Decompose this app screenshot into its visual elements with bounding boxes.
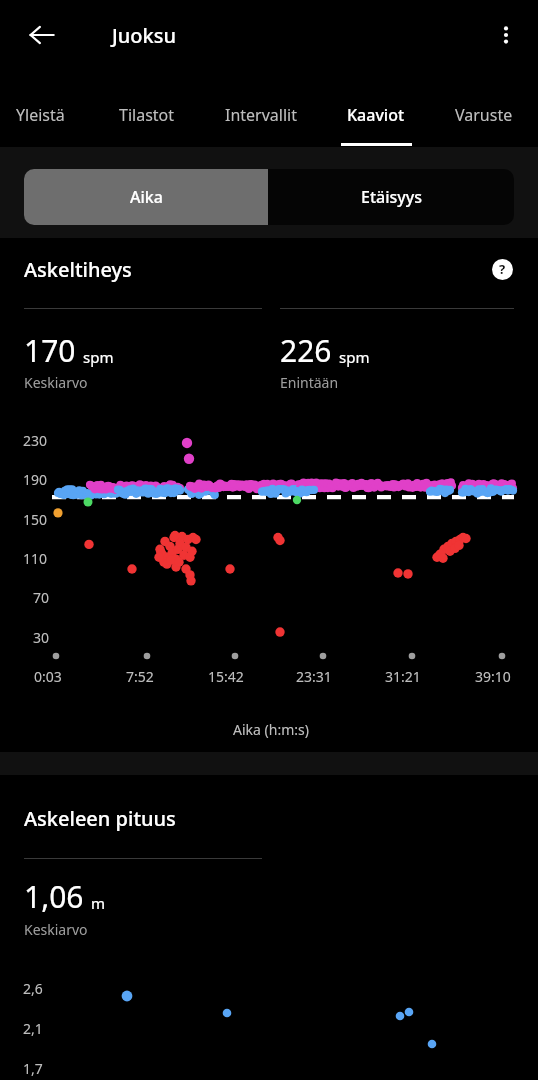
staticText: 2,1 [23,1019,43,1038]
staticText: m [91,893,106,913]
button[interactable]: Intervallit [203,90,319,146]
staticText: 0:03 [34,667,62,686]
button[interactable]: Etäisyys [268,169,514,225]
staticText: 110 [23,549,48,568]
button[interactable]: Tilastot [99,90,195,146]
button[interactable]: Yleistä [0,90,85,146]
staticText: 7:52 [126,667,154,686]
staticText: Intervallit [225,104,297,126]
staticText: Kaaviot [347,104,405,126]
staticText: Varuste [455,104,513,126]
button[interactable]: Aika [24,169,268,225]
staticText: 15:42 [208,667,244,686]
staticText: Askeltiheys [24,256,132,283]
staticText: Juoksu [112,22,176,49]
staticText: Yleistä [16,104,65,126]
staticText: 1,7 [23,1059,43,1078]
staticText: 30 [33,628,50,647]
staticText: 23:31 [296,667,332,686]
staticText: Aika (h:m:s) [233,720,309,739]
staticText: ? [499,260,506,278]
staticText: 2,6 [23,979,43,998]
button[interactable]: Back [20,13,64,57]
staticText: Aika [130,186,163,208]
button[interactable]: More options [484,13,528,57]
staticText: 31:21 [385,667,421,686]
staticText: 170 [24,330,76,371]
staticText: 230 [23,431,48,450]
staticText: 70 [33,588,50,607]
button[interactable]: Help [481,248,523,290]
staticText: Tilastot [119,104,175,126]
button[interactable]: Kaaviot [330,90,422,146]
staticText: Etäisyys [361,186,422,208]
staticText: 226 [280,330,332,371]
staticText: 190 [23,470,48,489]
staticText: Askeleen pituus [24,805,176,832]
staticText: spm [339,347,370,367]
staticText: 1,06 [24,876,84,917]
staticText: spm [83,347,114,367]
staticText: 39:10 [475,667,511,686]
staticText: 150 [23,510,48,529]
button[interactable]: Varuste [432,90,536,146]
staticText: Keskiarvo [24,920,88,939]
staticText: Keskiarvo [24,373,88,392]
staticText: Enintään [280,373,339,392]
